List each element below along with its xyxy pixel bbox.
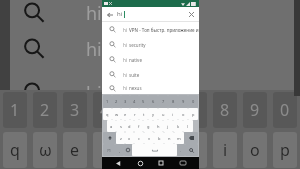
staticText: security [129,42,146,48]
staticText: c [138,136,140,141]
staticText: hi [123,72,129,78]
button[interactable]: d [125,120,134,132]
button[interactable]: 3 [121,95,130,108]
staticText: y [152,112,155,117]
staticText: 2 [115,99,118,104]
staticText: hi [86,81,107,106]
staticText: suite [107,37,150,62]
staticText: 3 [70,99,80,121]
button[interactable]: hi [102,67,199,82]
staticText: p [280,139,290,161]
button[interactable]: Recents [155,157,167,169]
staticText: hi [123,57,129,63]
staticText: 0 [192,99,195,104]
staticText: g [147,124,150,129]
button[interactable]: 4 [130,95,139,108]
staticText: t [143,112,145,117]
button[interactable]: hi [102,22,199,37]
staticText: 7 [190,99,200,121]
staticText: 0 [280,99,290,121]
staticText: 8 [172,99,175,104]
button[interactable]: u [158,108,168,120]
button[interactable]: Back [112,157,124,169]
button[interactable]: f [134,120,143,132]
staticText: 2 [40,99,50,121]
button[interactable]: Home [134,157,146,169]
button[interactable]: 1 [103,95,112,108]
staticText: u [190,139,200,161]
button[interactable]: j [163,120,173,132]
button[interactable]: 6 [148,95,158,108]
button[interactable]: r [130,108,139,120]
staticText: v [148,136,151,141]
staticText: b [158,136,161,141]
staticText: 8 [220,99,230,121]
button[interactable]: 0 [188,95,198,108]
button[interactable]: w [112,108,121,120]
button[interactable]: l [183,120,193,132]
button[interactable]: b [154,132,164,144]
button[interactable]: t [139,108,148,120]
staticText: t [132,139,138,161]
staticText: ω [39,139,52,161]
staticText: n [168,136,171,141]
button[interactable]: ?1 [103,144,115,156]
staticText: i [223,139,228,161]
button[interactable]: e [121,108,130,120]
staticText: hi [123,27,129,33]
staticText: q [10,139,20,161]
button[interactable]: 2 [112,95,121,108]
staticText: , [119,148,121,153]
button[interactable]: m [174,132,184,144]
button[interactable]: g [143,120,153,132]
button[interactable] [184,132,198,144]
staticText: nexus [107,81,159,106]
button[interactable] [185,144,198,156]
button[interactable]: n [164,132,174,144]
button[interactable]: v [144,132,154,144]
staticText: 5 [130,99,140,121]
staticText: r [134,112,136,117]
button[interactable]: 8 [168,95,178,108]
staticText: h [157,124,160,129]
button[interactable]: 7 [158,95,168,108]
button[interactable]: h [153,120,163,132]
staticText: l [187,124,189,129]
button[interactable]: hi [102,52,199,67]
button[interactable]: Back [104,9,115,20]
button[interactable]: 9 [178,95,188,108]
button[interactable]: s [116,120,125,132]
button[interactable]: Clear [186,9,197,20]
button[interactable]: k [173,120,183,132]
button[interactable]: z [116,132,125,144]
staticText: k [177,124,180,129]
button[interactable] [103,132,116,144]
button[interactable]: 5 [139,95,148,108]
button[interactable]: q [103,108,112,120]
button[interactable] [124,144,132,156]
button[interactable] [132,144,177,156]
button[interactable]: a [107,120,116,132]
staticText: 9 [250,99,260,121]
staticText: hi [86,37,107,62]
staticText: q [106,112,109,117]
button[interactable]: i [168,108,178,120]
button[interactable]: x [125,132,134,144]
staticText: hi [86,1,107,26]
staticText: u [162,112,165,117]
staticText: s [120,124,122,129]
button[interactable]: o [178,108,188,120]
button[interactable]: Switch keyboard [177,157,189,169]
staticText: 9 [182,99,185,104]
button[interactable]: hi [102,82,199,94]
button[interactable]: p [188,108,198,120]
button[interactable]: y [148,108,158,120]
staticText: r [102,139,109,161]
staticText: suite [129,72,140,78]
button[interactable]: c [134,132,144,144]
staticText: VPN - Топ быстр. приложение и защита [129,27,199,33]
button[interactable]: hi [102,37,199,52]
staticText: i [172,112,174,117]
